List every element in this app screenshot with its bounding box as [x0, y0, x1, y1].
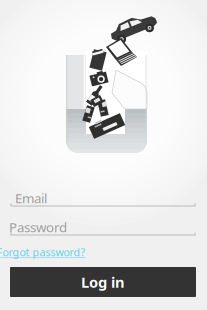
button[interactable]: Forgot password?: [0, 245, 85, 259]
staticText: Email: [15, 189, 47, 207]
staticText: Log in: [81, 272, 125, 292]
button[interactable]: Log in: [10, 267, 196, 297]
staticText: Password: [9, 218, 67, 236]
staticText: Forgot password?: [0, 245, 85, 259]
